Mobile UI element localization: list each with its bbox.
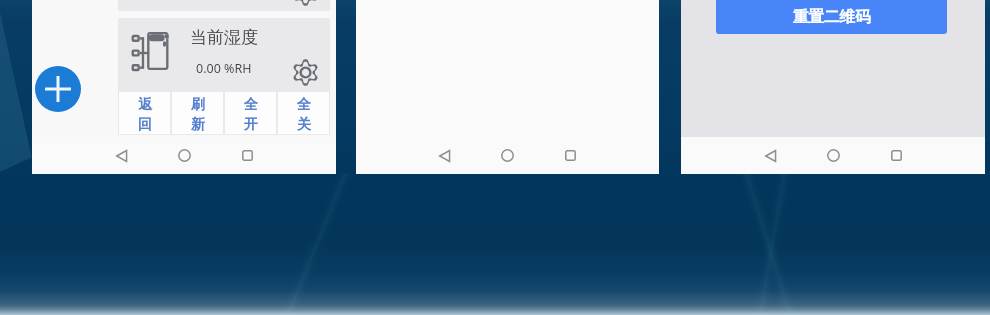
button[interactable]: Back bbox=[739, 137, 802, 174]
button[interactable]: Home bbox=[476, 137, 539, 174]
staticText: 刷 新 bbox=[191, 96, 205, 133]
button[interactable]: Settings bbox=[291, 0, 320, 7]
button[interactable]: Settings bbox=[291, 58, 320, 87]
button[interactable]: Back bbox=[90, 137, 153, 174]
button[interactable]: Add bbox=[35, 66, 81, 112]
button[interactable]: 刷 新 bbox=[172, 92, 223, 134]
button[interactable]: 返 回 bbox=[119, 92, 170, 134]
staticText: 全 关 bbox=[297, 96, 311, 133]
button[interactable]: Recents bbox=[216, 137, 279, 174]
button[interactable]: Recents bbox=[865, 137, 928, 174]
staticText: 当前湿度 bbox=[190, 27, 258, 48]
button[interactable]: 全 关 bbox=[278, 92, 329, 134]
button[interactable]: 重置二维码 bbox=[716, 0, 947, 34]
button[interactable]: Home bbox=[802, 137, 865, 174]
button[interactable]: Recents bbox=[539, 137, 602, 174]
staticText: 0.00 %RH bbox=[196, 60, 252, 77]
staticText: 全 开 bbox=[244, 96, 258, 133]
button[interactable]: Home bbox=[153, 137, 216, 174]
button[interactable]: 全 开 bbox=[225, 92, 276, 134]
button[interactable]: Back bbox=[413, 137, 476, 174]
staticText: 返 回 bbox=[138, 96, 152, 133]
staticText: 重置二维码 bbox=[793, 7, 871, 27]
